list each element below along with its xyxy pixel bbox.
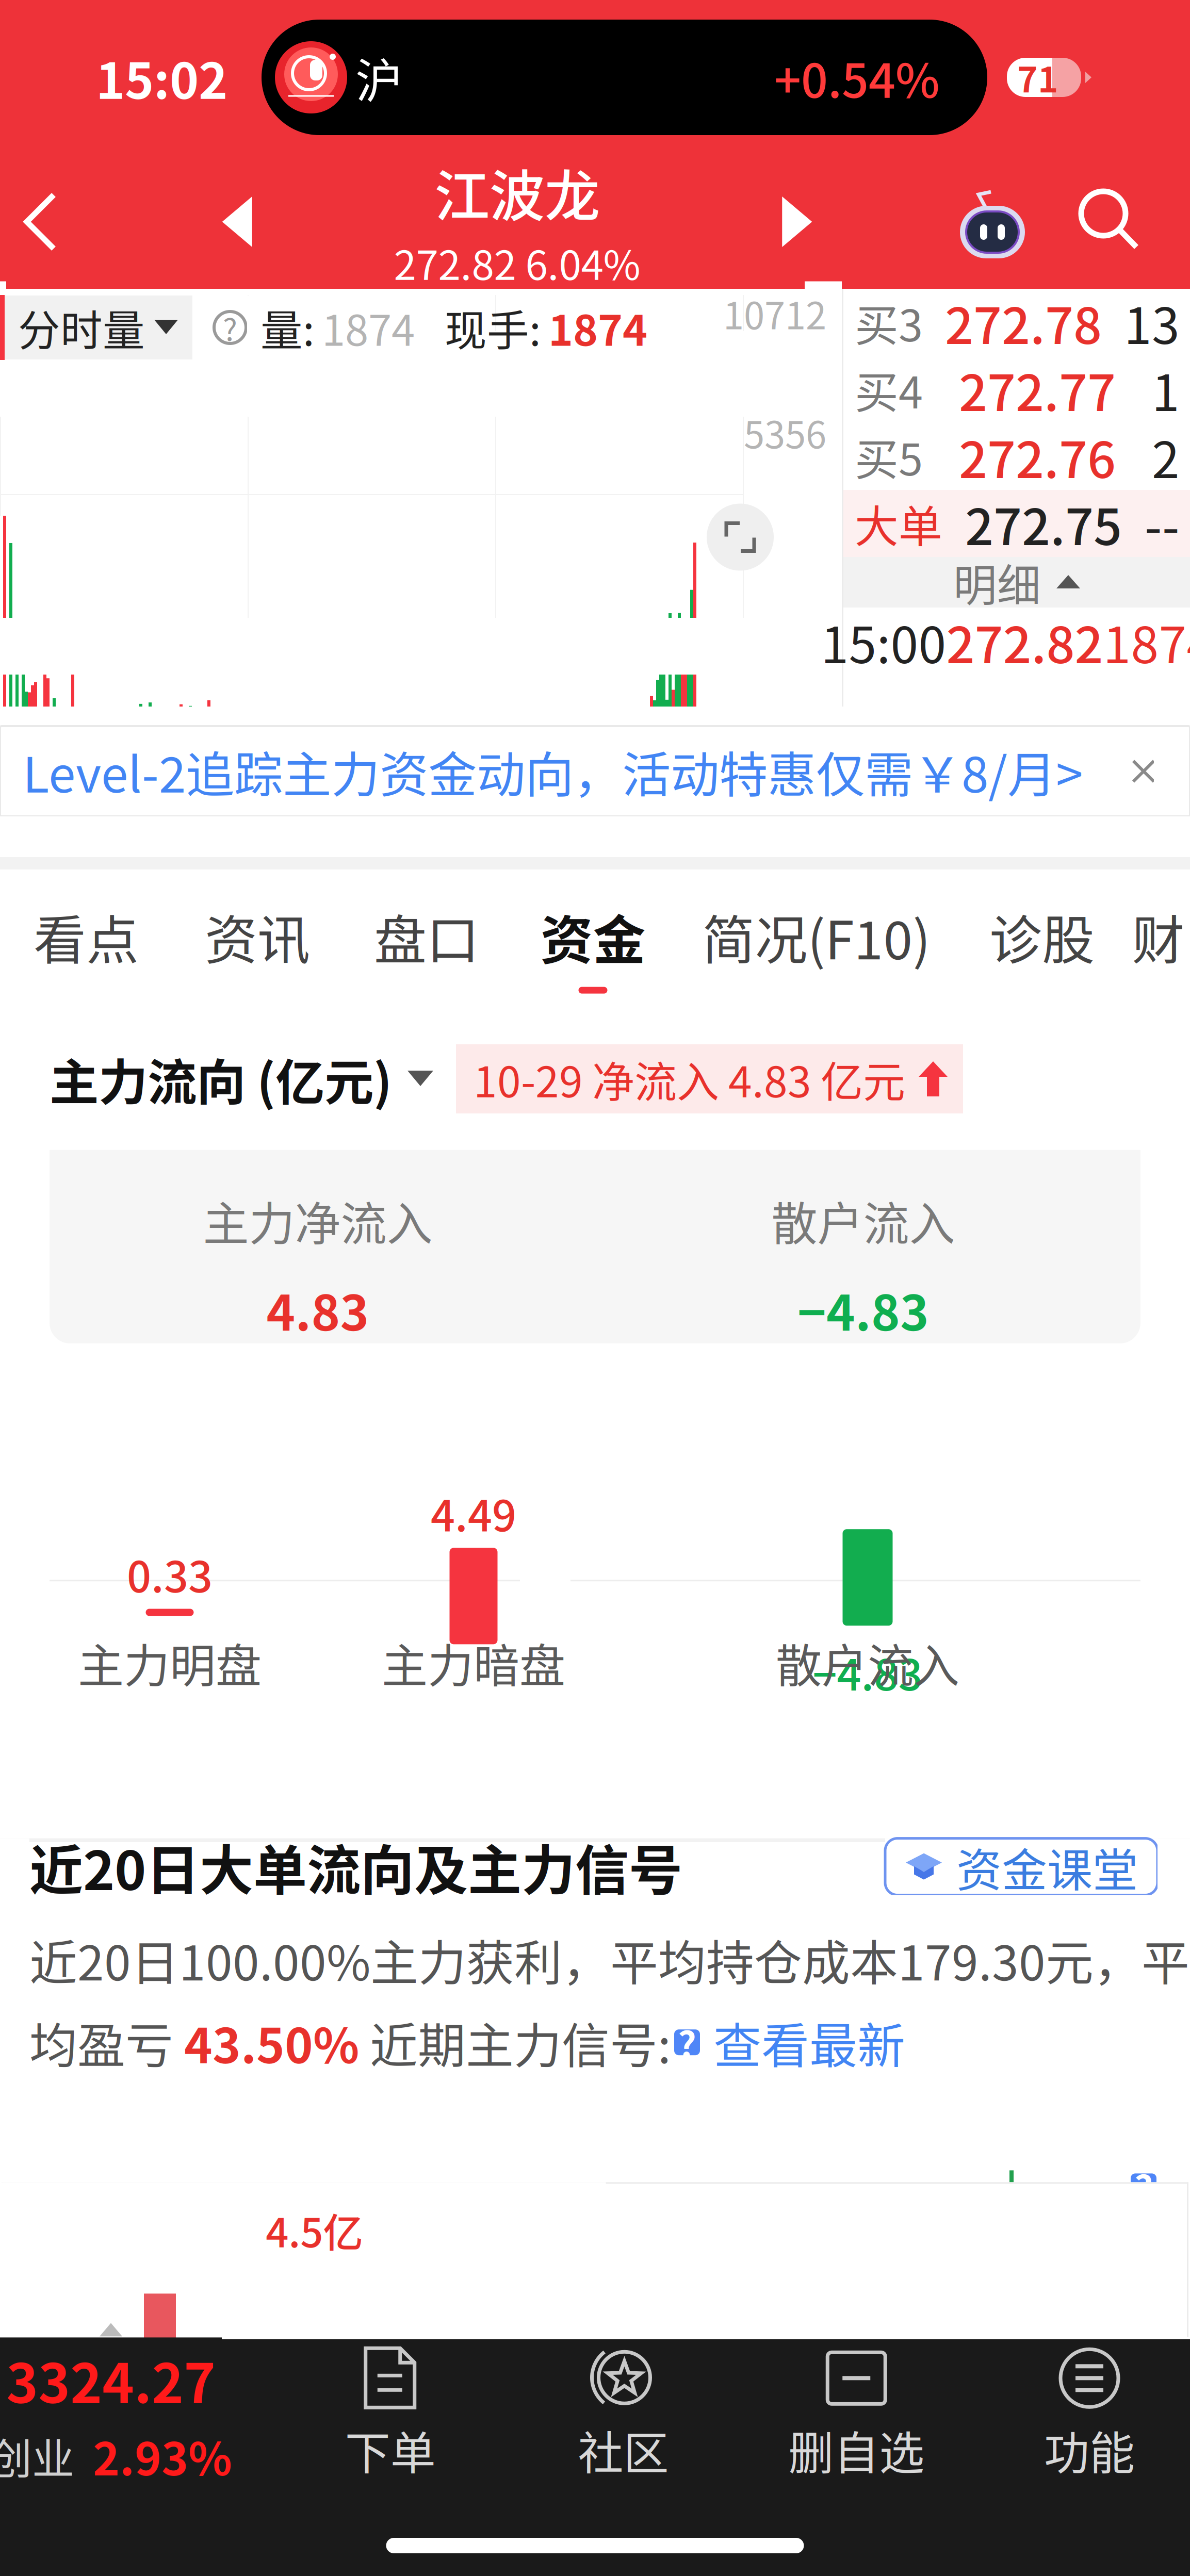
button[interactable]: 资金课堂	[885, 1838, 1158, 1895]
staticText: 分时量	[18, 297, 145, 358]
staticText: 4.83	[266, 1274, 369, 1345]
staticText: 社区	[578, 2417, 669, 2483]
button[interactable]: 盘口	[343, 869, 511, 1011]
staticText: 43.50%	[184, 2008, 359, 2077]
staticText: 主力暗盘	[382, 1629, 565, 1696]
staticText: 沪	[355, 43, 402, 111]
staticText: 272.82	[946, 606, 1103, 678]
staticText: 散户流入	[776, 1629, 959, 1696]
button[interactable]: 看点	[0, 869, 172, 1011]
staticText: --	[1145, 487, 1180, 559]
button[interactable]: Next stock	[759, 174, 835, 270]
button[interactable]: Level-2追踪主力资金动向，活动特惠仅需￥8/月>	[0, 726, 1190, 816]
staticText: 4.49	[431, 1482, 516, 1544]
staticText: 10712	[723, 286, 826, 340]
staticText: 查看最新	[713, 2008, 905, 2077]
staticText: 10-29 净流入 4.83 亿元	[474, 1048, 905, 1110]
staticText: 3324.27	[6, 2341, 216, 2419]
staticText: 功能	[1044, 2417, 1135, 2483]
staticText: 看点	[34, 898, 139, 974]
staticText: 2	[1152, 420, 1180, 492]
staticText: 1874	[322, 297, 415, 358]
staticText: 均盈亏	[29, 2008, 184, 2077]
staticText: 09:30	[6, 281, 96, 333]
staticText: 主力净流入	[203, 1187, 433, 1254]
staticText: −4.83	[797, 1274, 929, 1345]
staticText: 删自选	[788, 2417, 924, 2483]
staticText: 1874	[548, 297, 647, 358]
button[interactable]: 社区	[559, 2349, 688, 2477]
staticText: 11:30	[360, 281, 451, 333]
staticText: 明细	[953, 551, 1041, 614]
staticText: 1874	[1103, 606, 1190, 678]
button[interactable]: 诊股	[957, 869, 1127, 1011]
staticText: 5356	[744, 405, 826, 459]
button[interactable]: 功能	[1025, 2349, 1154, 2477]
staticText: 大单	[855, 492, 942, 555]
staticText: 15:00	[714, 281, 805, 333]
staticText: 1	[1152, 353, 1180, 425]
staticText: 资金课堂	[956, 1834, 1138, 1900]
staticText: Level-2追踪主力资金动向，活动特惠仅需￥8/月>	[23, 736, 1083, 806]
staticText: 资金	[540, 898, 646, 974]
staticText: 下单	[345, 2417, 436, 2483]
staticText: 诊股	[989, 898, 1095, 974]
staticText: 13	[1124, 286, 1180, 358]
button[interactable]: Previous stock	[200, 174, 275, 270]
button[interactable]: 分时量	[5, 296, 192, 359]
staticText: 4.5亿	[266, 2201, 363, 2259]
staticText: +0.54%	[774, 43, 940, 111]
staticText: ?	[1134, 2160, 1153, 2212]
staticText: ?	[678, 2016, 696, 2068]
staticText: 简况(F10)	[702, 898, 930, 974]
staticText: 近20日100.00%主力获利，平均持仓成本179.30元，平	[29, 1925, 1189, 1994]
staticText: 创业	[0, 2425, 74, 2486]
staticText: 资讯	[205, 898, 310, 974]
staticText: 2.93%	[93, 2423, 232, 2488]
staticText: 主力流向 (亿元)	[50, 1043, 392, 1115]
staticText: 买3	[855, 291, 923, 354]
staticText: 量:	[260, 297, 315, 358]
staticText: 15:00	[821, 606, 946, 678]
staticText: 江波龙	[434, 152, 600, 232]
button[interactable]: 资讯	[172, 869, 343, 1011]
staticText: 272.75	[965, 487, 1122, 559]
staticText: 272.76	[959, 420, 1116, 492]
staticText: 71	[1017, 52, 1058, 102]
staticText: 272.78	[945, 286, 1102, 358]
staticText: ?	[223, 305, 237, 350]
button[interactable]: 删自选	[792, 2349, 921, 2477]
button[interactable]: 明细	[843, 557, 1190, 608]
button[interactable]: Back	[0, 169, 80, 274]
button[interactable]: 查看最新	[713, 2008, 905, 2077]
button[interactable]: Search	[1075, 187, 1146, 257]
button[interactable]: AI assistant	[954, 183, 1031, 260]
staticText: 近20日大单流向及主力信号	[29, 1828, 682, 1906]
button[interactable]: 3324.27	[0, 2349, 222, 2477]
staticText: −4.83	[813, 1641, 923, 1703]
button[interactable]: 财	[1127, 869, 1190, 1011]
staticText: 近期主力信号:	[359, 2008, 671, 2077]
staticText: 散户流入	[771, 1187, 955, 1254]
button[interactable]: 主力流向 (亿元)	[50, 1043, 433, 1115]
staticText: 现手:	[445, 297, 541, 358]
button[interactable]: 下单	[326, 2349, 455, 2477]
staticText: 主力明盘	[78, 1629, 262, 1696]
staticText: 272.82 6.04%	[394, 233, 640, 292]
staticText: 盘口	[374, 898, 479, 974]
staticText: 15:02	[96, 42, 227, 113]
staticText: 买5	[855, 425, 923, 488]
button[interactable]: 资金	[511, 869, 675, 1011]
button[interactable]: 简况(F10)	[675, 869, 957, 1011]
staticText: 0.33	[127, 1543, 213, 1605]
staticText: 买4	[855, 358, 923, 421]
staticText: 272.77	[959, 353, 1116, 425]
staticText: 财	[1132, 898, 1185, 974]
